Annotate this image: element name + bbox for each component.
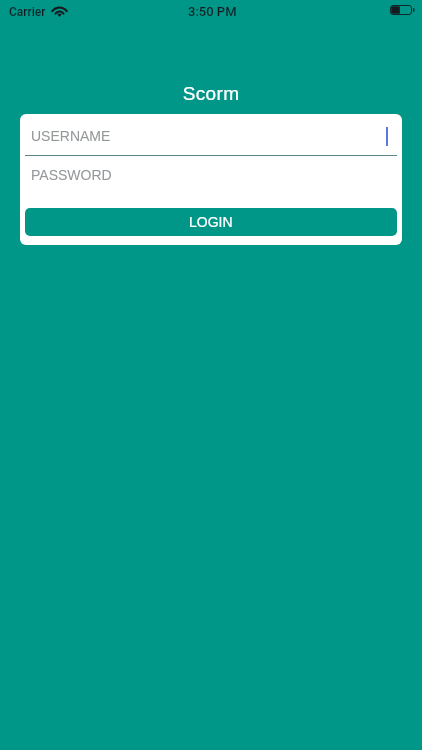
button[interactable]: LOGIN <box>25 208 397 236</box>
staticText: 3:50 PM <box>188 4 237 19</box>
staticText: Carrier <box>9 5 46 19</box>
staticText: USERNAME <box>31 128 111 144</box>
staticText: PASSWORD <box>31 167 112 183</box>
other: Wi-Fi signal <box>52 7 67 17</box>
button[interactable]: USERNAME <box>20 114 402 156</box>
staticText: LOGIN <box>189 214 233 230</box>
button[interactable]: PASSWORD <box>20 156 402 195</box>
other: Battery <box>390 5 416 15</box>
staticText: Scorm <box>0 83 422 104</box>
